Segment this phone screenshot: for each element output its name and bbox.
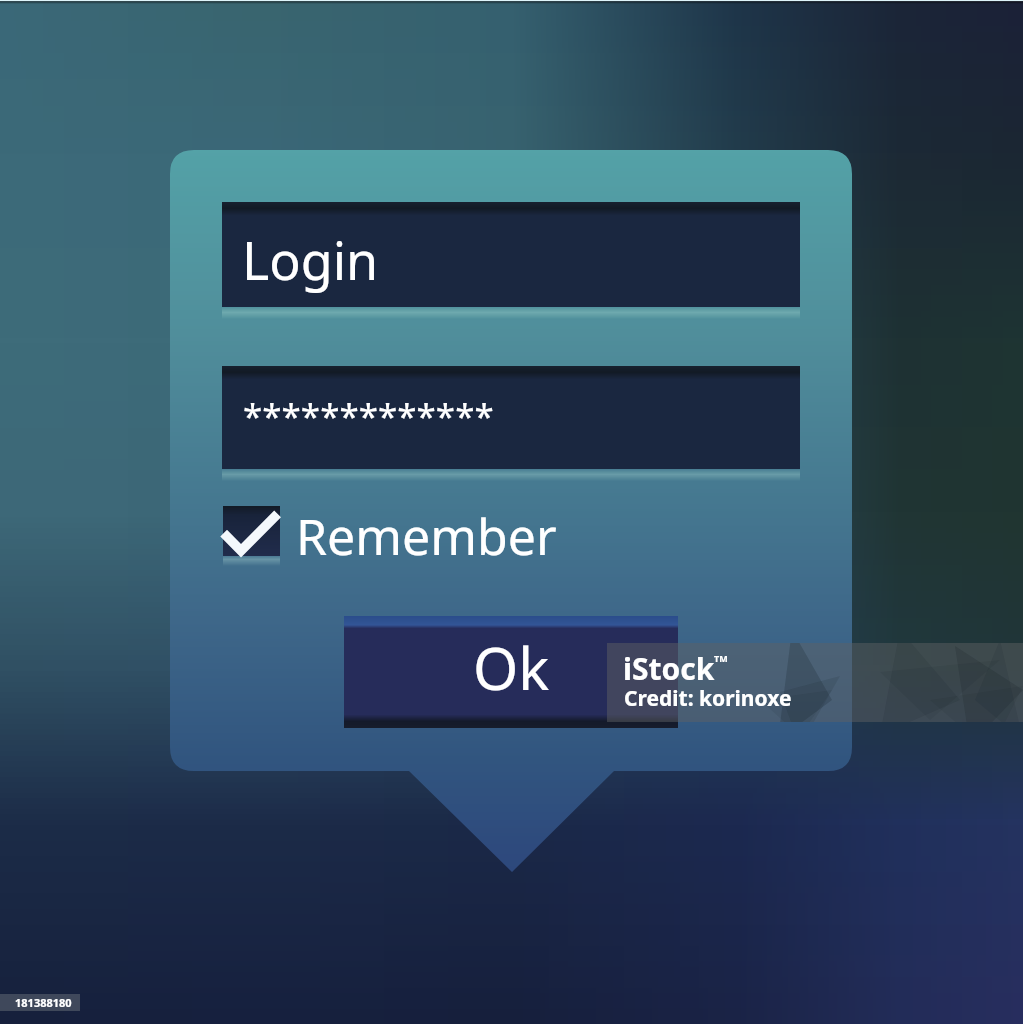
button[interactable] xyxy=(218,498,563,566)
staticText: Ok xyxy=(473,628,550,707)
button[interactable] xyxy=(344,616,678,728)
staticText: Remember xyxy=(296,502,557,570)
button[interactable]: Password field xyxy=(222,366,800,476)
staticText: Login xyxy=(242,224,379,295)
button[interactable]: Login field xyxy=(222,202,800,314)
staticText: Credit: korinoxe xyxy=(624,684,792,713)
staticText: ************* xyxy=(243,392,494,440)
staticText: TM xyxy=(714,652,728,664)
staticText: 181388180 xyxy=(15,995,72,1010)
staticText: iStock xyxy=(623,648,715,689)
